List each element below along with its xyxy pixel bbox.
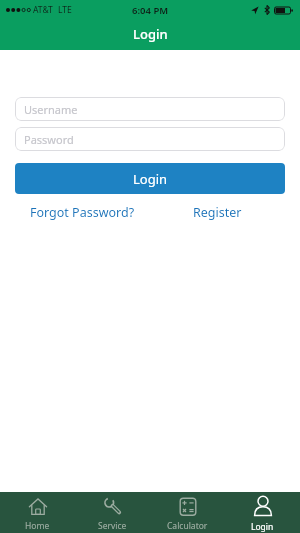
button[interactable]: Username <box>15 97 285 121</box>
staticText: Password <box>24 132 74 147</box>
button[interactable]: Login <box>225 492 300 533</box>
button[interactable]: Forgot Password? <box>15 204 150 221</box>
button[interactable]: Home <box>0 492 75 533</box>
staticText: Service <box>98 520 127 532</box>
staticText: Register <box>193 204 242 221</box>
staticText: 6:04 PM <box>132 4 169 17</box>
staticText: Login <box>133 25 168 43</box>
staticText: LTE <box>58 4 72 16</box>
button[interactable]: Calculator <box>150 492 225 533</box>
staticText: Home <box>25 520 50 532</box>
staticText: Forgot Password? <box>30 204 135 221</box>
button[interactable]: Service <box>75 492 150 533</box>
button[interactable]: Password <box>15 127 285 151</box>
staticText: Calculator <box>167 520 208 532</box>
button[interactable]: Register <box>150 204 285 221</box>
button[interactable]: Login <box>15 163 285 194</box>
staticText: Username <box>24 102 78 117</box>
staticText: Login <box>133 170 168 188</box>
staticText: Login <box>251 521 274 533</box>
staticText: AT&T <box>33 4 53 16</box>
